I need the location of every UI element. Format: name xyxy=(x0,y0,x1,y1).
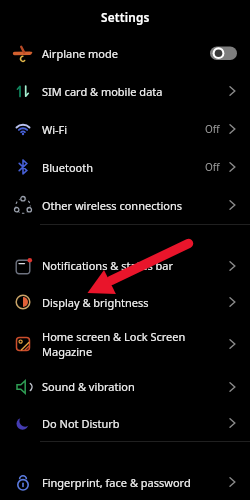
button[interactable]: Do Not Disturb xyxy=(0,405,250,441)
staticText: Wi-Fi xyxy=(42,122,68,137)
button[interactable]: Fingerprint, face & password xyxy=(0,464,250,500)
staticText: Home screen & Lock Screen xyxy=(42,329,186,344)
staticText: Other wireless connections xyxy=(42,198,182,213)
button[interactable]: Other wireless connections xyxy=(0,186,250,224)
staticText: Airplane mode xyxy=(42,46,118,61)
staticText: Magazine xyxy=(42,344,93,359)
button[interactable]: Sound & vibration xyxy=(0,368,250,405)
button[interactable]: Wi-Fi xyxy=(0,110,250,148)
button[interactable]: Notifications & status bar xyxy=(0,247,250,284)
staticText: Fingerprint, face & password xyxy=(42,475,191,490)
staticText: Bluetooth xyxy=(42,160,94,175)
staticText: Notifications & status bar xyxy=(42,258,173,273)
staticText: Do Not Disturb xyxy=(42,416,120,431)
staticText: Display & brightness xyxy=(42,295,149,310)
staticText: Off xyxy=(205,160,220,174)
staticText: Settings xyxy=(101,9,150,25)
button[interactable]: Bluetooth xyxy=(0,148,250,186)
button[interactable]: Airplane mode xyxy=(0,34,250,72)
staticText: SIM card & mobile data xyxy=(42,84,163,99)
staticText: Off xyxy=(205,122,220,136)
staticText: Sound & vibration xyxy=(42,379,135,394)
button[interactable]: Display & brightness xyxy=(0,284,250,320)
button[interactable]: Home screen & Lock Screen xyxy=(0,320,250,368)
button[interactable]: SIM card & mobile data xyxy=(0,72,250,110)
